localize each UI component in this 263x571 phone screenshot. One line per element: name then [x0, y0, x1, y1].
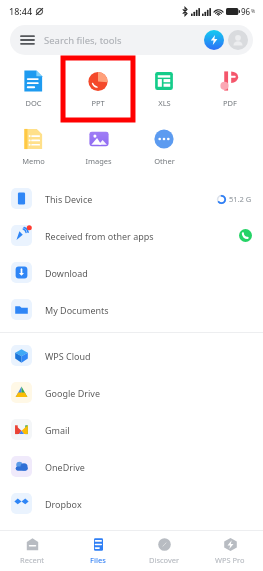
staticText: PPT — [91, 98, 105, 108]
button[interactable]: Recent — [0, 531, 65, 571]
staticText: Images — [85, 156, 112, 166]
button[interactable]: Files — [65, 531, 131, 571]
button[interactable]: Quick actions — [204, 30, 224, 50]
staticText: XLS — [158, 98, 171, 108]
button[interactable]: Google Drive — [0, 374, 263, 411]
button[interactable]: XLS — [146, 67, 182, 110]
staticText: Download — [45, 267, 252, 279]
button[interactable]: My Documents — [0, 291, 263, 328]
staticText: Discover — [149, 555, 180, 565]
staticText: Other — [154, 156, 175, 166]
staticText: Recent — [20, 555, 45, 565]
staticText: % — [251, 8, 256, 15]
staticText: Dropbox — [45, 498, 252, 510]
button[interactable]: PDF — [212, 67, 248, 110]
staticText: 51.2 G — [229, 194, 252, 204]
button[interactable]: PPT — [80, 67, 116, 110]
button[interactable]: DOC — [15, 67, 51, 110]
button[interactable]: Other — [146, 125, 182, 168]
staticText: 18:44 — [9, 5, 33, 17]
button[interactable]: This Device — [0, 180, 263, 217]
staticText: 96 — [241, 6, 251, 17]
button[interactable]: Account — [228, 30, 248, 50]
button[interactable]: Menu — [18, 31, 36, 49]
staticText: Google Drive — [45, 387, 252, 399]
staticText: WPS Cloud — [45, 350, 252, 362]
button[interactable]: Menu — [10, 25, 253, 55]
button[interactable]: Received from other apps — [0, 217, 263, 254]
button[interactable]: Images — [79, 125, 118, 168]
button[interactable]: WPS Cloud — [0, 337, 263, 374]
staticText: This Device — [45, 193, 217, 205]
button[interactable]: OneDrive — [0, 448, 263, 485]
staticText: My Documents — [45, 304, 252, 316]
staticText: WPS Pro — [215, 555, 245, 565]
staticText: DOC — [25, 98, 42, 108]
staticText: Memo — [22, 156, 45, 166]
staticText: PDF — [223, 98, 237, 108]
button[interactable]: Memo — [15, 125, 51, 168]
staticText: Search files, tools — [44, 34, 204, 47]
button[interactable]: WPS Pro — [197, 531, 263, 571]
button[interactable]: Download — [0, 254, 263, 291]
button[interactable]: Dropbox — [0, 485, 263, 522]
staticText: OneDrive — [45, 461, 252, 473]
staticText: Received from other apps — [45, 230, 239, 242]
staticText: Files — [90, 555, 106, 565]
button[interactable]: Gmail — [0, 411, 263, 448]
button[interactable]: Discover — [131, 531, 197, 571]
staticText: Gmail — [45, 424, 252, 436]
